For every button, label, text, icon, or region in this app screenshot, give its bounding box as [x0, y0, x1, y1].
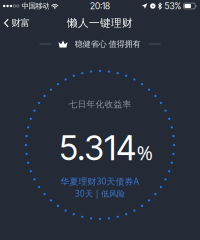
button[interactable]: 财富	[0, 13, 35, 33]
staticText: 30天 | 低风险	[75, 188, 125, 199]
staticText: 七日年化收益率	[68, 99, 131, 110]
staticText: 中国移动	[21, 1, 49, 11]
staticText: 财富	[11, 17, 29, 29]
staticText: 5.314	[59, 128, 136, 168]
staticText: 懒人一键理财	[67, 16, 133, 30]
staticText: 华夏理财30天债券A	[60, 175, 139, 187]
staticText: 20:18	[90, 1, 110, 11]
button[interactable]: 华夏理财30天债券A	[54, 173, 145, 201]
staticText: 53%	[165, 1, 182, 11]
staticText: 稳健省心 值得拥有	[74, 39, 140, 49]
staticText: %	[137, 140, 153, 166]
